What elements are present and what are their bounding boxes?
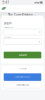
staticText: Continue with Google <box>16 84 29 86</box>
staticText: Password <box>4 36 12 38</box>
staticText: LOGIN <box>18 53 26 57</box>
button[interactable]: LOGIN <box>4 52 41 58</box>
staticText: 9:41 <box>2 1 9 4</box>
staticText: Login <box>4 21 12 25</box>
staticText: Continue with Facebook <box>14 76 30 78</box>
staticText: Email address <box>4 27 14 28</box>
staticText: The Curry Kitchen Caterers <box>8 13 37 17</box>
button[interactable]: Continue with Google <box>4 82 41 88</box>
button[interactable]: Continue with Facebook <box>4 73 41 81</box>
staticText: or sign in with <box>18 68 26 70</box>
